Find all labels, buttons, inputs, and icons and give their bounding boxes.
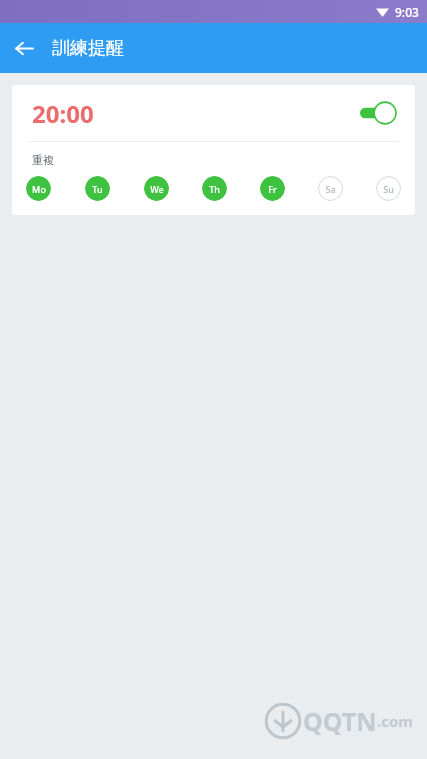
button[interactable]: Sa (318, 176, 343, 201)
staticText: Mo (32, 183, 46, 195)
staticText: We (150, 183, 164, 195)
staticText: Th (209, 183, 220, 195)
button[interactable]: Tu (85, 176, 110, 201)
button[interactable]: Su (376, 176, 401, 201)
staticText: Tu (92, 183, 103, 195)
staticText: 重複 (32, 153, 54, 167)
staticText: QQTN (303, 704, 377, 738)
staticText: 訓練提醒 (52, 37, 124, 60)
button[interactable]: Th (202, 176, 227, 201)
button[interactable]: We (144, 176, 169, 201)
staticText: Su (383, 183, 394, 195)
button[interactable]: Mo (26, 176, 51, 201)
button[interactable]: Fr (260, 176, 285, 201)
button[interactable]: Toggle reminder (359, 100, 397, 126)
button[interactable]: Back (0, 24, 48, 72)
staticText: .com (377, 711, 413, 731)
staticText: Sa (325, 183, 336, 195)
staticText: 9:03 (395, 4, 419, 20)
staticText: 20:00 (32, 97, 94, 130)
staticText: Fr (268, 183, 277, 195)
button[interactable]: 20:00 (12, 85, 415, 141)
